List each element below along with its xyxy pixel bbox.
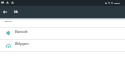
- button[interactable]: Bluetooth: [0, 28, 125, 39]
- button[interactable]: Wallpapers: [0, 40, 125, 51]
- staticText: Wallpapers: [15, 42, 29, 45]
- staticText: blu: [14, 10, 19, 14]
- staticText: Bluetooth: [15, 30, 28, 33]
- button[interactable]: Back: [0, 6, 10, 18]
- staticText: Results: [5, 20, 12, 22]
- staticText: 10:18: [114, 2, 120, 5]
